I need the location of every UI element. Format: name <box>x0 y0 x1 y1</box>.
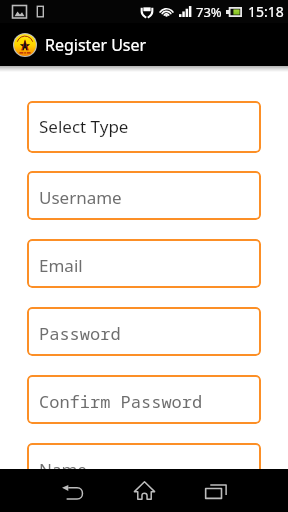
button[interactable]: Email <box>27 239 261 288</box>
button[interactable]: Home <box>108 469 180 512</box>
button[interactable]: Confirm Password <box>27 375 261 424</box>
staticText: Register User <box>45 34 147 56</box>
button[interactable]: Select Type <box>27 101 261 153</box>
staticText: Email <box>39 254 83 277</box>
staticText: Password <box>39 322 121 345</box>
button[interactable]: Back <box>36 469 108 512</box>
staticText: Select Type <box>39 115 129 138</box>
button[interactable]: Recent apps <box>180 469 252 512</box>
staticText: Username <box>39 186 122 209</box>
staticText: 15:18 <box>248 2 284 21</box>
staticText: 73% <box>196 3 222 21</box>
button[interactable]: Password <box>27 307 261 356</box>
button[interactable]: Username <box>27 171 261 220</box>
staticText: Name <box>39 458 87 481</box>
staticText: Confirm Password <box>39 390 203 413</box>
button[interactable]: Name <box>27 443 261 492</box>
